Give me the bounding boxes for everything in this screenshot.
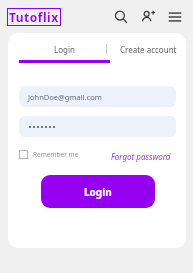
staticText: Forgot password: [111, 151, 171, 162]
button[interactable]: Menu: [164, 6, 186, 28]
button[interactable]: Remember me: [19, 150, 79, 159]
button[interactable]: JohnDoe@gmail.com: [19, 86, 176, 107]
staticText: JohnDoe@gmail.com: [28, 92, 102, 102]
button[interactable]: Tutoflix: [7, 8, 61, 26]
button[interactable]: Login: [41, 175, 155, 208]
button[interactable]: Login: [20, 40, 108, 58]
button[interactable]: Add account: [137, 6, 159, 28]
button[interactable]: Search: [110, 6, 132, 28]
staticText: Login: [54, 44, 75, 55]
staticText: Tutoflix: [9, 9, 59, 25]
button[interactable]: Forgot password: [111, 151, 171, 162]
button[interactable]: [19, 116, 176, 137]
staticText: Create account: [120, 44, 177, 55]
staticText: Remember me: [33, 150, 79, 159]
button[interactable]: Create account: [111, 40, 186, 58]
staticText: Login: [84, 185, 112, 199]
